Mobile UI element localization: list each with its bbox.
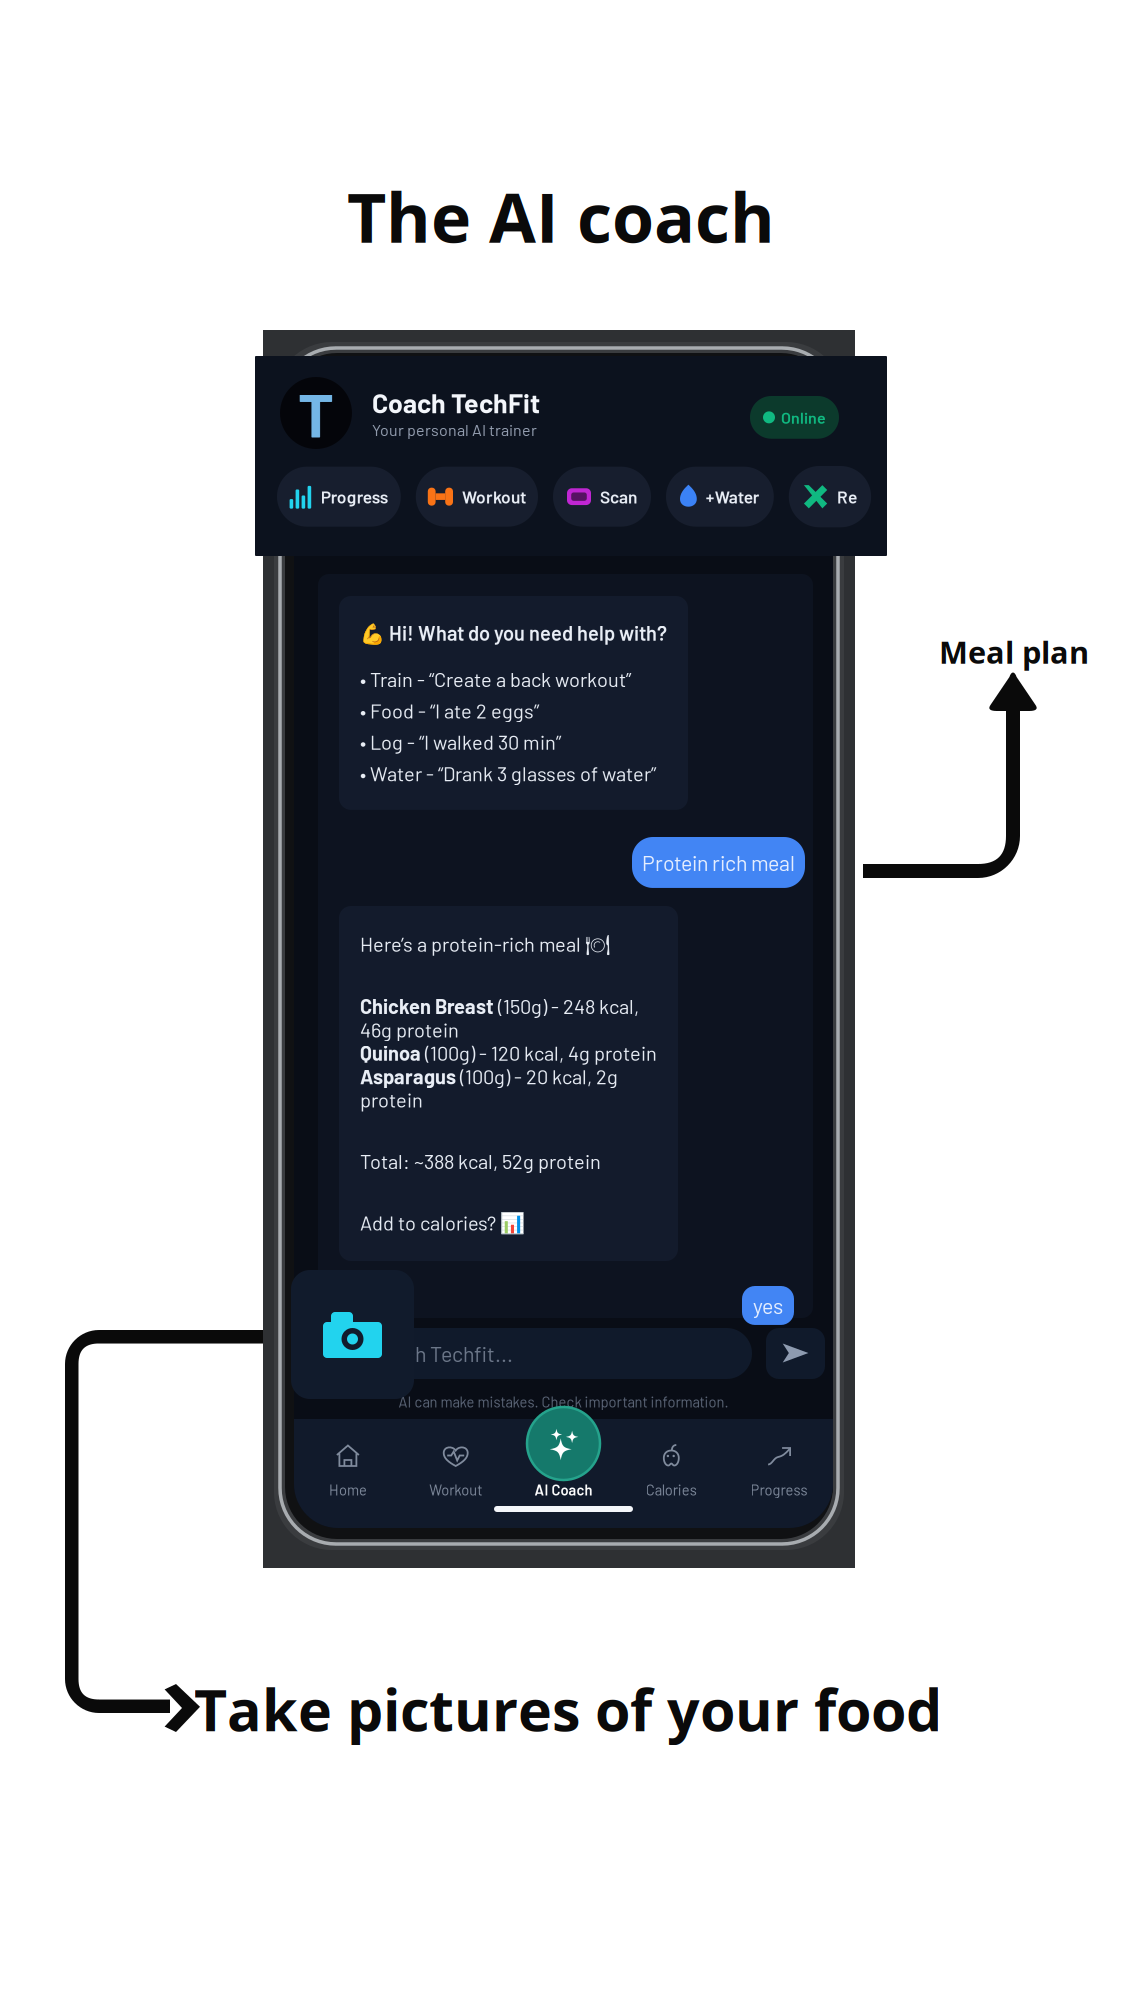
button[interactable]: Progress <box>725 1478 833 1501</box>
button[interactable]: Progress <box>309 428 409 463</box>
staticText: Progress <box>751 1481 808 1498</box>
staticText: • Log - “I walked 30 min” <box>360 730 561 753</box>
button[interactable]: AI Coach <box>527 1407 600 1480</box>
staticText: Protein rich meal <box>642 850 795 875</box>
button[interactable]: Progress <box>277 467 401 527</box>
staticText: Online <box>781 408 826 427</box>
button[interactable]: Re <box>789 466 871 527</box>
staticText: T <box>298 377 334 449</box>
staticText: AI can make mistakes. Check important in… <box>398 1393 728 1410</box>
staticText: Online <box>770 383 805 399</box>
staticText: Meal plan <box>939 631 1089 673</box>
staticText: AI Coach <box>534 1481 592 1498</box>
staticText: Calories <box>646 1481 697 1498</box>
staticText: Workout <box>429 1481 482 1498</box>
button[interactable]: Calories <box>617 1478 725 1501</box>
button[interactable]: Send <box>766 1328 825 1379</box>
staticText: Your personal AI trainer <box>362 400 496 416</box>
staticText: Progress <box>321 486 389 507</box>
staticText: T <box>320 370 340 409</box>
staticText: Asparagus (100g) - 20 kcal, 2g <box>360 1064 618 1088</box>
staticText: 46g protein <box>360 1018 459 1041</box>
button[interactable]: Scan <box>553 467 651 527</box>
staticText: The AI coach <box>347 170 775 263</box>
staticText: Total: ~388 kcal, 52g protein <box>360 1149 601 1173</box>
staticText: protein <box>360 1088 423 1111</box>
staticText: Coach TechFit <box>362 374 505 400</box>
staticText: Chicken Breast (150g) - 248 kcal, <box>360 994 639 1018</box>
button[interactable]: Workout <box>416 467 538 527</box>
button[interactable]: Scan <box>523 428 600 463</box>
button[interactable]: Workout <box>417 428 515 463</box>
staticText: Take pictures of your food <box>194 1670 942 1748</box>
staticText: +Water <box>706 486 760 507</box>
button[interactable]: +Water <box>666 467 774 527</box>
staticText: Ask Coach Techfit... <box>330 1341 513 1366</box>
staticText: • Water - “Drank 3 glasses of water” <box>360 761 656 785</box>
staticText: Scan <box>600 486 637 507</box>
staticText: Add to calories? 📊 <box>360 1211 525 1235</box>
button[interactable]: Home <box>294 1478 402 1501</box>
staticText: yes <box>753 1293 783 1318</box>
button[interactable]: Workout <box>402 1478 510 1501</box>
staticText: Quinoa (100g) - 120 kcal, 4g protein <box>360 1041 657 1064</box>
staticText: • Train - “Create a back workout” <box>360 667 631 691</box>
staticText: Coach TechFit <box>372 387 540 418</box>
staticText: Home <box>329 1481 367 1498</box>
button[interactable]: AI Coach <box>510 1478 617 1501</box>
staticText: • Food - “I ate 2 eggs” <box>360 699 539 722</box>
staticText: 💪 Hi! What do you need help with? <box>360 621 667 645</box>
staticText: Workout <box>462 486 526 507</box>
staticText: Re <box>837 486 857 507</box>
staticText: Here’s a protein-rich meal 🍽 <box>360 932 610 956</box>
staticText: Your personal AI trainer <box>372 420 537 439</box>
button[interactable]: Take a picture of your food <box>291 1270 414 1399</box>
